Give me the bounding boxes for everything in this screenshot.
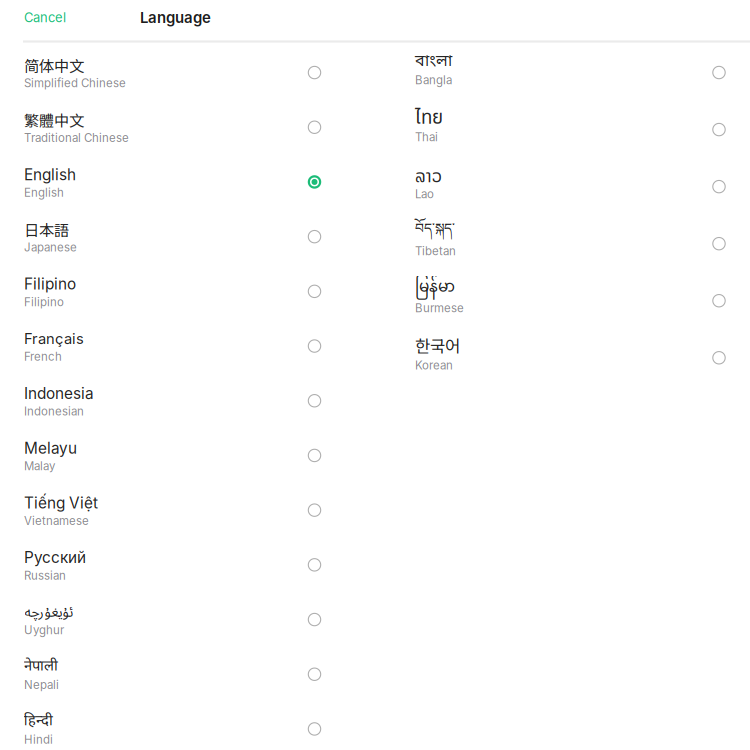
button[interactable]: हिन्दी (0, 702, 375, 750)
staticText: Russian (24, 569, 66, 582)
staticText: English (24, 186, 64, 200)
button[interactable]: Русский (0, 537, 375, 592)
staticText: Filipino (24, 275, 76, 293)
staticText: Lao (415, 187, 434, 201)
button[interactable]: 简体中文 (0, 45, 375, 100)
staticText: Thai (415, 130, 438, 144)
staticText: Malay (24, 459, 55, 473)
staticText: Русский (24, 548, 86, 567)
staticText: French (24, 350, 62, 364)
button[interactable]: ئۇيغۇرچە (0, 592, 375, 647)
staticText: English (24, 165, 76, 184)
staticText: Language (140, 8, 211, 27)
staticText: বাংলা (415, 51, 452, 73)
button[interactable]: বাংলা (375, 44, 750, 101)
staticText: Nepali (24, 678, 59, 692)
staticText: Tiếng Việt (24, 493, 98, 512)
button[interactable]: Filipino (0, 264, 375, 319)
button[interactable]: 日本語 (0, 209, 375, 264)
staticText: Uyghur (24, 623, 64, 637)
staticText: ไทย (415, 104, 443, 132)
button[interactable]: English (0, 155, 375, 209)
staticText: Vietnamese (24, 514, 89, 528)
staticText: Hindi (24, 733, 53, 747)
button[interactable]: Tiếng Việt (0, 483, 375, 537)
staticText: Filipino (24, 295, 64, 309)
button[interactable]: བོད་སྐད་ (375, 215, 750, 272)
staticText: Simplified Chinese (24, 76, 126, 90)
staticText: Cancel (24, 10, 66, 25)
staticText: Melayu (24, 439, 77, 457)
staticText: ئۇيغۇرچە (24, 597, 73, 627)
staticText: བོད་སྐད་ (415, 212, 455, 252)
staticText: Japanese (24, 240, 77, 254)
staticText: Burmese (415, 301, 464, 315)
staticText: Traditional Chinese (24, 131, 129, 145)
button[interactable]: ไทย (375, 101, 750, 158)
staticText: 简体中文 (24, 54, 84, 76)
staticText: हिन्दी (24, 712, 53, 731)
staticText: 한국어 (415, 333, 460, 357)
button[interactable]: Français (0, 319, 375, 373)
staticText: Indonesia (24, 384, 94, 403)
button[interactable]: Cancel (0, 0, 110, 41)
staticText: Tibetan (415, 244, 456, 258)
button[interactable]: नेपाली (0, 647, 375, 702)
staticText: ລາວ (415, 162, 442, 190)
button[interactable]: Indonesia (0, 373, 375, 428)
staticText: Bangla (415, 73, 452, 87)
button[interactable]: ລາວ (375, 158, 750, 215)
staticText: Korean (415, 358, 453, 372)
staticText: မြန်မာ (415, 271, 455, 305)
button[interactable]: Melayu (0, 428, 375, 483)
staticText: नेपाली (24, 657, 58, 676)
staticText: Français (24, 330, 84, 347)
staticText: 日本語 (24, 218, 69, 240)
button[interactable]: 繁體中文 (0, 100, 375, 155)
button[interactable]: 한국어 (375, 329, 750, 386)
staticText: Indonesian (24, 404, 84, 418)
staticText: 繁體中文 (24, 109, 84, 131)
button[interactable]: မြန်မာ (375, 272, 750, 329)
